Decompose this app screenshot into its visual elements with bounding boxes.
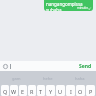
button[interactable]: Send	[79, 63, 92, 70]
staticText: gam	[12, 76, 21, 81]
button[interactable]: nangangompissa suhaha	[44, 0, 93, 11]
staticText: Send	[79, 63, 92, 70]
staticText: E	[21, 88, 25, 95]
staticText: U	[58, 88, 63, 95]
staticText: nangangompissa suhaha	[46, 1, 93, 11]
staticText: I	[70, 88, 72, 95]
button[interactable]: haha	[64, 71, 96, 85]
button[interactable]: W	[10, 85, 18, 96]
staticText: Y	[49, 88, 53, 95]
staticText: W	[11, 88, 17, 95]
button[interactable]: E	[19, 85, 27, 96]
staticText: Q	[3, 88, 8, 95]
button[interactable]: Emoji	[0, 61, 10, 71]
button[interactable]: T	[37, 85, 45, 96]
staticText: hehe	[43, 76, 53, 81]
staticText: haha	[75, 76, 85, 81]
button[interactable]: Q	[1, 85, 9, 96]
button[interactable]: R	[28, 85, 36, 96]
button[interactable]: hehe	[32, 71, 64, 85]
button[interactable]: O	[76, 85, 85, 96]
staticText: T	[39, 88, 43, 95]
button[interactable]: Y	[46, 85, 55, 96]
button[interactable]: U	[56, 85, 65, 96]
staticText: R	[30, 88, 34, 95]
staticText: P	[89, 88, 93, 95]
staticText: O	[78, 88, 83, 95]
button[interactable]: P	[86, 85, 95, 96]
button[interactable]: I	[66, 85, 75, 96]
staticText: minutin	[77, 6, 88, 10]
